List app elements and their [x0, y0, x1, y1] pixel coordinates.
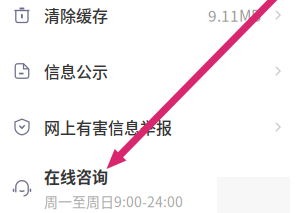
staticText: 在线咨询: [44, 165, 108, 188]
staticText: 网上有害信息举报: [44, 115, 172, 139]
button[interactable]: 网上有害信息举报: [0, 99, 297, 155]
button[interactable]: 在线咨询: [0, 155, 297, 213]
staticText: 清除缓存: [44, 3, 108, 27]
staticText: 信息公示: [44, 59, 108, 83]
button[interactable]: 清除缓存: [0, 0, 297, 43]
staticText: 周一至周日9:00-24:00: [44, 191, 183, 211]
button[interactable]: 信息公示: [0, 43, 297, 99]
staticText: 9.11MB: [208, 4, 261, 26]
